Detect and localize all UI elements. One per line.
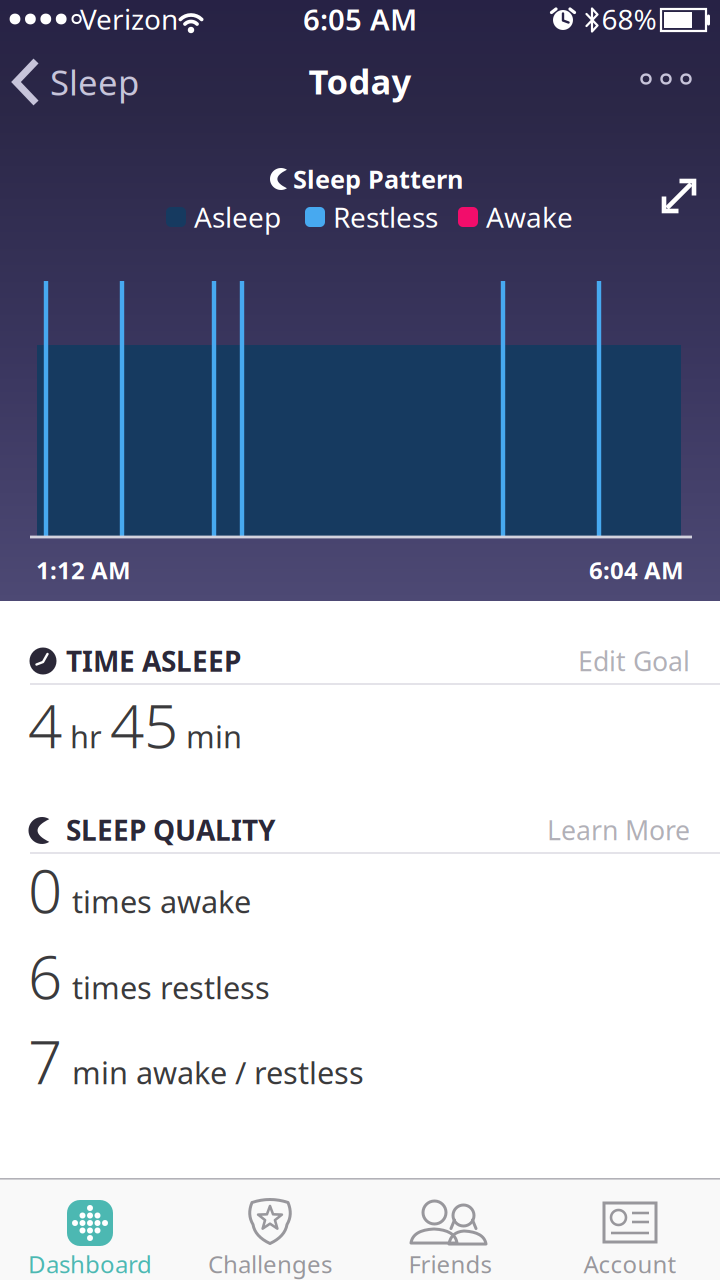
staticText: Account	[583, 1248, 676, 1280]
staticText: 4	[28, 685, 62, 765]
staticText: 0	[28, 850, 62, 930]
staticText: TIME ASLEEP	[66, 642, 241, 680]
staticText: min awake / restless	[72, 1052, 364, 1093]
staticText: SLEEP QUALITY	[66, 811, 276, 849]
button[interactable]: More	[626, 57, 706, 101]
staticText: Asleep	[194, 198, 281, 236]
button[interactable]: Expand chart	[657, 174, 701, 218]
button[interactable]: Edit Goal	[490, 639, 690, 683]
staticText: Dashboard	[28, 1248, 152, 1280]
button[interactable]: Friends	[360, 1178, 540, 1280]
staticText: Challenges	[208, 1248, 332, 1280]
button[interactable]: Dashboard	[0, 1178, 180, 1280]
staticText: 45	[110, 685, 178, 765]
staticText: times awake	[72, 881, 251, 922]
staticText: Awake	[486, 198, 573, 236]
staticText: 7	[28, 1021, 62, 1101]
staticText: 6:04 AM	[589, 554, 684, 586]
staticText: min	[186, 716, 242, 757]
staticText: Verizon	[80, 0, 178, 38]
staticText: 68%	[601, 0, 656, 38]
staticText: hr	[70, 716, 102, 757]
staticText: 6:05 AM	[303, 0, 417, 38]
staticText: Edit Goal	[578, 643, 690, 679]
button[interactable]: Challenges	[180, 1178, 360, 1280]
staticText: Sleep Pattern	[293, 162, 463, 196]
button[interactable]: Sleep	[14, 52, 164, 112]
button[interactable]: Learn More	[490, 808, 690, 852]
button[interactable]: Account	[540, 1178, 720, 1280]
staticText: Friends	[408, 1248, 491, 1280]
staticText: 6	[28, 936, 62, 1016]
staticText: Learn More	[547, 812, 690, 848]
staticText: Today	[308, 58, 411, 104]
staticText: 1:12 AM	[36, 554, 131, 586]
staticText: Restless	[333, 198, 438, 236]
staticText: Sleep	[50, 59, 139, 105]
staticText: times restless	[72, 967, 270, 1008]
